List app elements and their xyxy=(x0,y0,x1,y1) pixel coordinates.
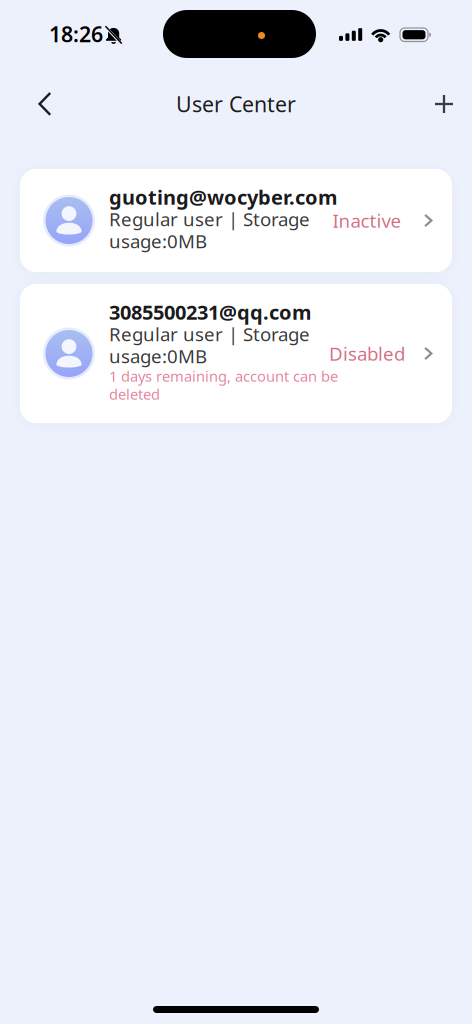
staticText: Regular user | Storage xyxy=(109,322,310,346)
button[interactable]: Back xyxy=(22,80,68,128)
staticText: usage:0MB xyxy=(109,344,207,368)
staticText: 1 days remaining, account can be xyxy=(109,366,338,386)
staticText: Inactive xyxy=(332,208,401,233)
staticText: deleted xyxy=(109,384,160,404)
staticText: 3085500231@qq.com xyxy=(109,299,312,325)
staticText: Disabled xyxy=(329,341,405,366)
staticText: usage:0MB xyxy=(109,229,207,253)
staticText: Regular user | Storage xyxy=(109,207,310,231)
staticText: 18:26 xyxy=(49,20,103,48)
staticText: guoting@wocyber.com xyxy=(109,184,338,210)
button[interactable]: guoting@wocyber.com xyxy=(0,169,472,272)
button[interactable]: Add account xyxy=(421,80,467,128)
button[interactable]: 3085500231@qq.com xyxy=(0,284,472,423)
staticText: User Center xyxy=(176,90,296,118)
